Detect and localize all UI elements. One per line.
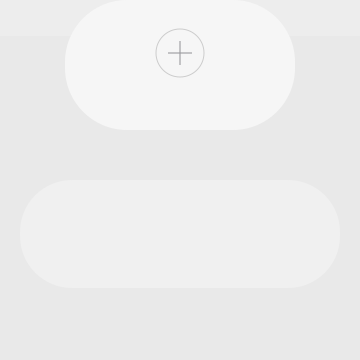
button[interactable]: Add (156, 29, 204, 77)
